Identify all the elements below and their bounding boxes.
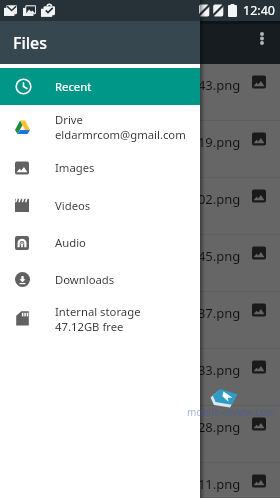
staticText: Recent xyxy=(55,79,92,94)
staticText: Screenshot_2016-09-11-12-33-45.png xyxy=(14,247,241,265)
staticText: Screenshot_2016-09-11-12-33-11.png xyxy=(14,475,241,493)
button[interactable]: Screenshot_2016-09-11-12-33-11.png xyxy=(0,463,280,498)
button[interactable]: Videos xyxy=(0,186,200,224)
staticText: Screenshot_2016-09-11-12-33-33.png xyxy=(14,361,241,379)
staticText: Downloads xyxy=(55,272,115,287)
staticText: eldarmrcom@gmail.com xyxy=(55,127,186,142)
button[interactable]: Images xyxy=(0,149,200,186)
button[interactable]: Downloads xyxy=(0,261,200,298)
button[interactable]: Screenshot_2016-09-11-12-34-43.png xyxy=(0,64,280,121)
staticText: Screenshot_2016-09-11-12-33-28.png xyxy=(14,418,241,436)
staticText: Videos xyxy=(55,198,91,213)
button[interactable]: Screenshot_2016-09-11-12-34-02.png xyxy=(0,178,280,235)
staticText: Audio xyxy=(55,235,86,250)
staticText: Screenshot_2016-09-11-12-34-43.png xyxy=(14,76,241,94)
staticText: Screenshot_2016-09-11-12-33-37.png xyxy=(14,304,241,322)
button[interactable]: Screenshot_2016-09-11-12-33-33.png xyxy=(0,349,280,406)
button[interactable]: Screenshot_2016-09-11-12-33-45.png xyxy=(0,235,280,292)
button[interactable]: Drive xyxy=(0,105,200,149)
staticText: mobile-review.com xyxy=(187,405,276,419)
staticText: Images xyxy=(55,160,95,175)
staticText: 12:40 xyxy=(243,2,275,19)
button[interactable]: Screenshot_2016-09-11-12-33-37.png xyxy=(0,292,280,349)
button[interactable]: Recent xyxy=(0,68,200,105)
staticText: Files xyxy=(13,32,48,54)
button[interactable]: Screenshot_2016-09-11-12-34-19.png xyxy=(0,121,280,178)
button[interactable]: Screenshot_2016-09-11-12-33-28.png xyxy=(0,406,280,463)
staticText: Screenshot_2016-09-11-12-34-19.png xyxy=(14,133,241,151)
staticText: Internal storage xyxy=(55,304,141,319)
staticText: Screenshot_2016-09-11-12-34-02.png xyxy=(14,190,241,208)
button[interactable]: Audio xyxy=(0,224,200,261)
staticText: Drive xyxy=(55,112,83,127)
button[interactable]: Internal storage xyxy=(0,298,200,339)
staticText: 47.12GB free xyxy=(55,319,124,334)
button[interactable]: More options xyxy=(252,28,272,48)
